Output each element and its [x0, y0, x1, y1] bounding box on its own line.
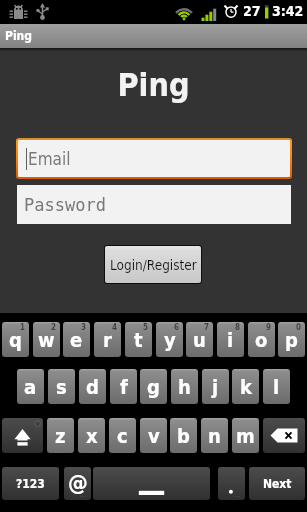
button[interactable]: Next — [249, 467, 305, 500]
button[interactable]: Password — [17, 185, 291, 224]
staticText: 27 — [243, 3, 261, 19]
staticText: p — [285, 328, 298, 351]
button[interactable]: x — [78, 418, 105, 453]
staticText: Login/Register — [110, 257, 197, 273]
button[interactable]: Backspace — [263, 418, 305, 453]
button[interactable]: w — [33, 322, 60, 357]
button[interactable]: l — [263, 369, 290, 404]
button[interactable]: s — [48, 369, 75, 404]
button[interactable]: Period — [218, 467, 245, 500]
button[interactable]: Space — [93, 467, 210, 500]
staticText: ... — [234, 491, 240, 499]
staticText: o — [255, 328, 268, 351]
staticText: x — [86, 424, 98, 447]
staticText: 3 — [81, 323, 87, 332]
staticText: 0 — [296, 323, 302, 332]
staticText: ... — [80, 491, 86, 499]
button[interactable]: Shift — [2, 418, 43, 453]
staticText: Ping — [117, 66, 190, 103]
staticText: 9 — [266, 323, 272, 332]
button[interactable]: @ — [64, 467, 91, 500]
staticText: t — [134, 328, 143, 351]
staticText: i — [227, 328, 234, 351]
staticText: @ — [68, 470, 88, 496]
button[interactable]: o — [248, 322, 275, 357]
staticText: ?123 — [16, 477, 45, 491]
staticText: l — [273, 375, 280, 398]
staticText: 8 — [235, 323, 241, 332]
staticText: 6 — [174, 323, 180, 332]
button[interactable]: v — [140, 418, 167, 453]
staticText: 3:42 — [272, 3, 304, 19]
staticText: f — [120, 375, 128, 398]
staticText: u — [193, 328, 206, 351]
button[interactable]: d — [79, 369, 106, 404]
staticText: y — [164, 328, 176, 351]
staticText: s — [56, 375, 67, 398]
button[interactable]: t — [125, 322, 152, 357]
button[interactable]: Email — [18, 140, 290, 177]
button[interactable]: r — [94, 322, 121, 357]
button[interactable]: y — [156, 322, 183, 357]
staticText: r — [103, 328, 112, 351]
staticText: Ping — [5, 29, 33, 43]
button[interactable]: z — [47, 418, 74, 453]
button[interactable]: Login/Register — [105, 246, 201, 283]
staticText: 4 — [112, 323, 118, 332]
button[interactable]: u — [186, 322, 213, 357]
staticText: w — [38, 328, 55, 351]
staticText: j — [212, 375, 219, 398]
staticText: Password — [24, 195, 106, 215]
button[interactable]: p — [278, 322, 305, 357]
button[interactable]: m — [232, 418, 259, 453]
staticText: z — [55, 424, 66, 447]
button[interactable]: i — [217, 322, 244, 357]
staticText: 7 — [204, 323, 210, 332]
staticText: 5 — [143, 323, 149, 332]
staticText: 2 — [51, 323, 57, 332]
staticText: e — [70, 328, 83, 351]
button[interactable]: f — [110, 369, 137, 404]
staticText: a — [24, 375, 37, 398]
button[interactable]: e — [63, 322, 90, 357]
staticText: b — [177, 424, 190, 447]
staticText: c — [117, 424, 128, 447]
button[interactable]: ?123 — [2, 467, 59, 500]
staticText: g — [147, 375, 160, 398]
staticText: 1 — [20, 323, 26, 332]
button[interactable]: h — [171, 369, 198, 404]
staticText: v — [148, 424, 160, 447]
button[interactable]: a — [17, 369, 44, 404]
button[interactable]: b — [170, 418, 197, 453]
button[interactable]: j — [202, 369, 229, 404]
button[interactable]: n — [201, 418, 228, 453]
button[interactable]: c — [109, 418, 136, 453]
staticText: d — [86, 375, 99, 398]
staticText: n — [208, 424, 221, 447]
staticText: Email — [28, 149, 71, 169]
button[interactable]: q — [2, 322, 29, 357]
staticText: q — [9, 328, 22, 351]
button[interactable]: k — [232, 369, 259, 404]
button[interactable]: g — [140, 369, 167, 404]
staticText: Next — [263, 477, 292, 491]
staticText: h — [178, 375, 191, 398]
staticText: k — [240, 375, 252, 398]
staticText: m — [236, 424, 255, 447]
